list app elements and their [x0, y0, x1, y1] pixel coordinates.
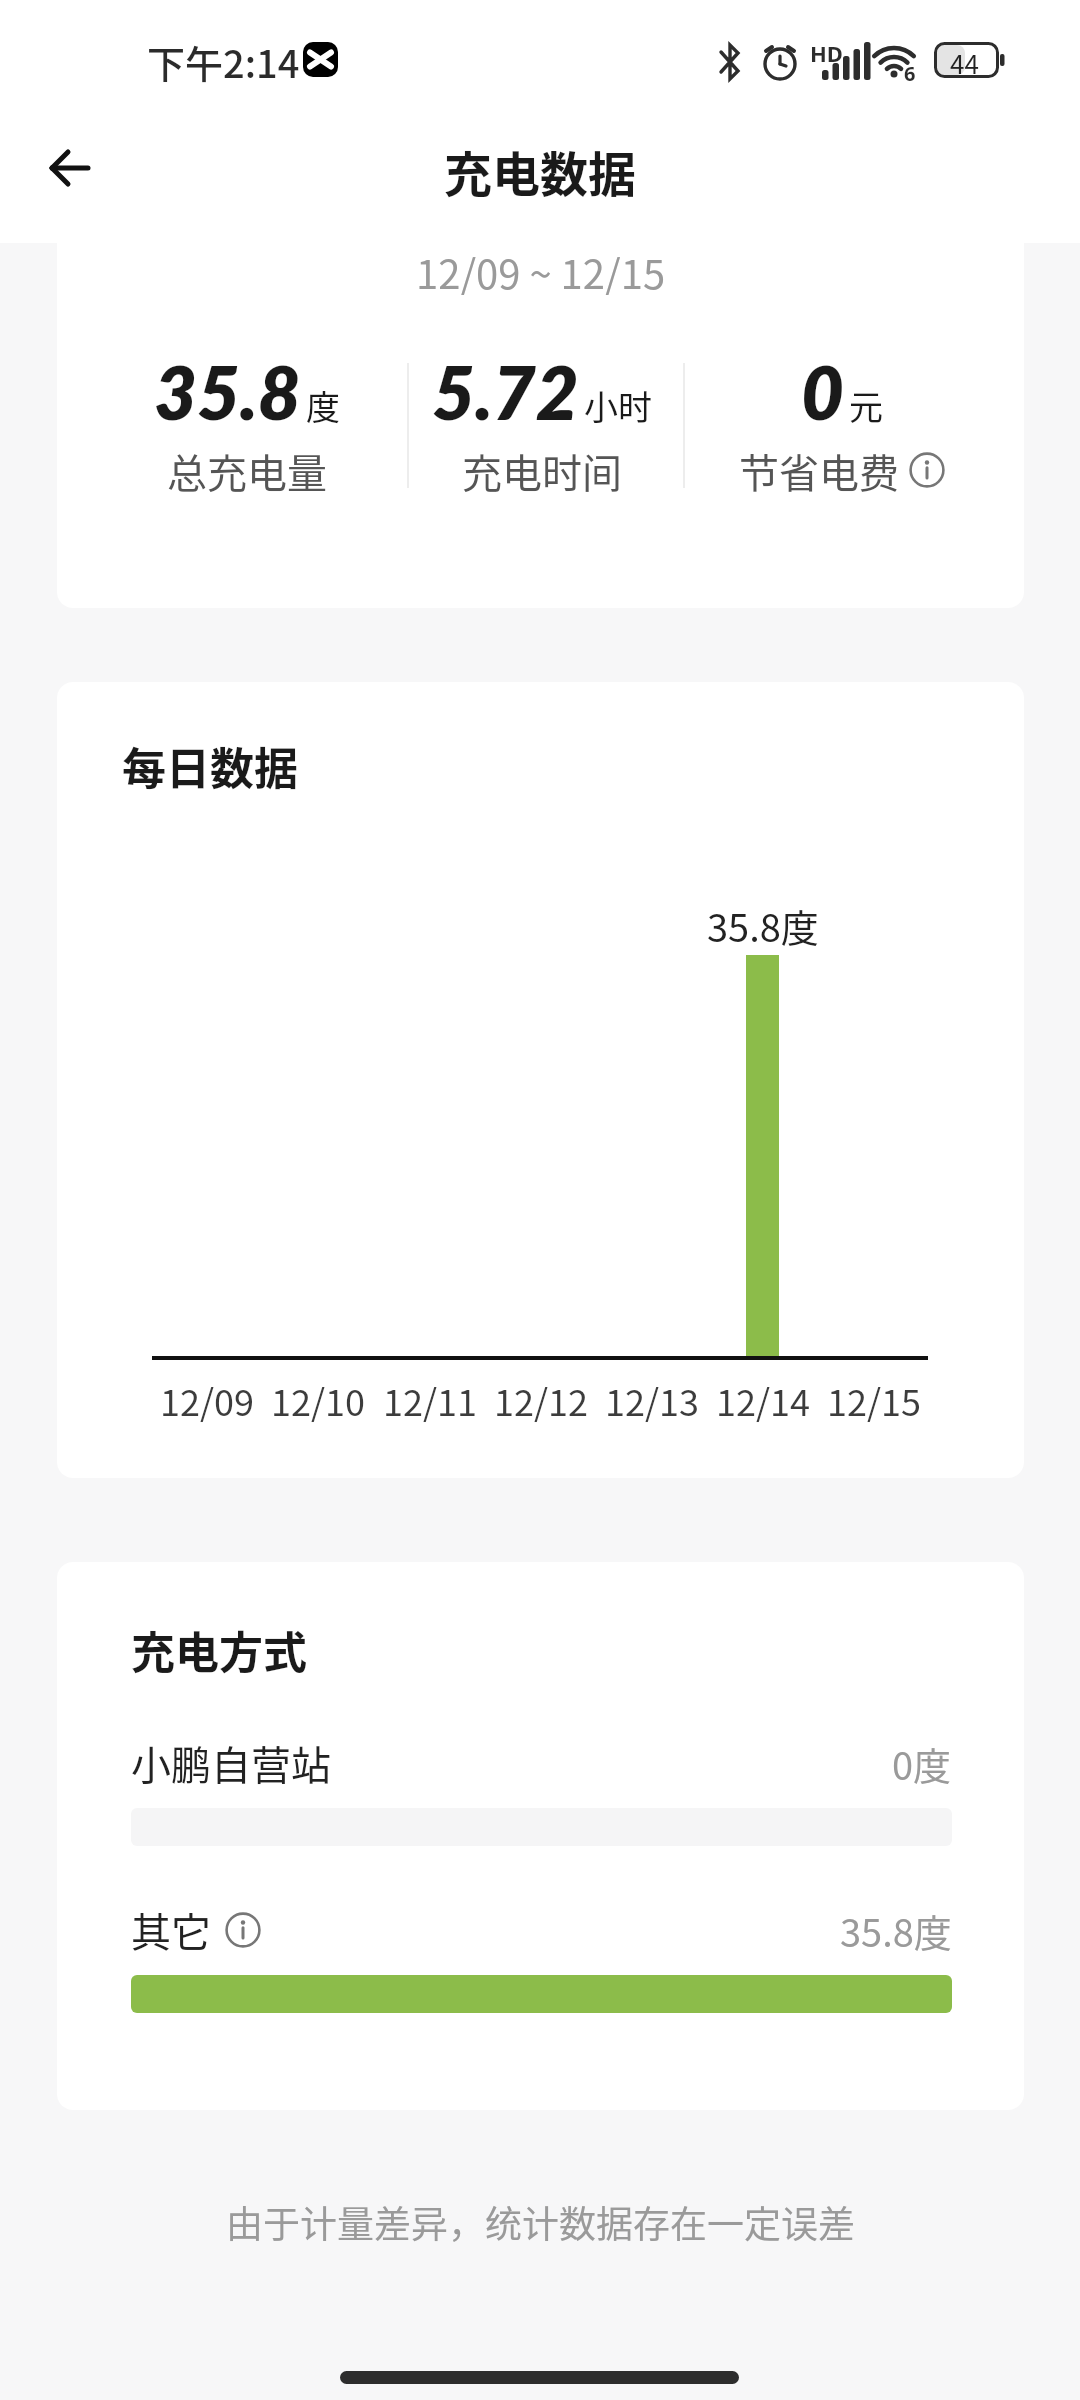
staticText: 12/15	[827, 1374, 922, 1426]
staticText: 12/13	[605, 1374, 700, 1426]
staticText: 35.8度	[707, 898, 819, 953]
staticText: 6	[904, 60, 916, 87]
staticText: 元	[849, 381, 883, 430]
staticText: 12/09 ~ 12/15	[416, 243, 666, 295]
staticText: 12/09	[160, 1374, 255, 1426]
button[interactable]	[909, 452, 945, 488]
staticText: 0度	[892, 1736, 952, 1791]
staticText: 度	[306, 381, 340, 430]
staticText: 小鹏自营站	[131, 1734, 331, 1792]
staticText: 小时	[584, 381, 652, 430]
staticText: 12/11	[383, 1374, 478, 1426]
staticText: 35.8	[154, 347, 301, 436]
staticText: 节省电费	[739, 442, 899, 497]
staticText: 35.8度	[840, 1903, 952, 1958]
staticText: 0	[801, 347, 844, 436]
staticText: 12/14	[716, 1374, 811, 1426]
staticText: 5.72	[432, 347, 579, 436]
staticText: HD	[810, 38, 843, 68]
button[interactable]	[48, 146, 92, 190]
staticText: 44	[950, 44, 979, 82]
staticText: 其它	[131, 1901, 211, 1959]
staticText: 充电时间	[462, 442, 622, 497]
staticText: 充电方式	[131, 1618, 307, 1682]
staticText: 由于计量差异，统计数据存在一定误差	[226, 2195, 855, 2249]
staticText: 充电数据	[444, 136, 637, 200]
staticText: 12/12	[494, 1374, 589, 1426]
staticText: 每日数据	[122, 734, 298, 798]
staticText: 下午2:14	[147, 34, 300, 89]
staticText: 12/10	[271, 1374, 366, 1426]
button[interactable]	[225, 1912, 261, 1948]
staticText: 总充电量	[167, 442, 327, 497]
